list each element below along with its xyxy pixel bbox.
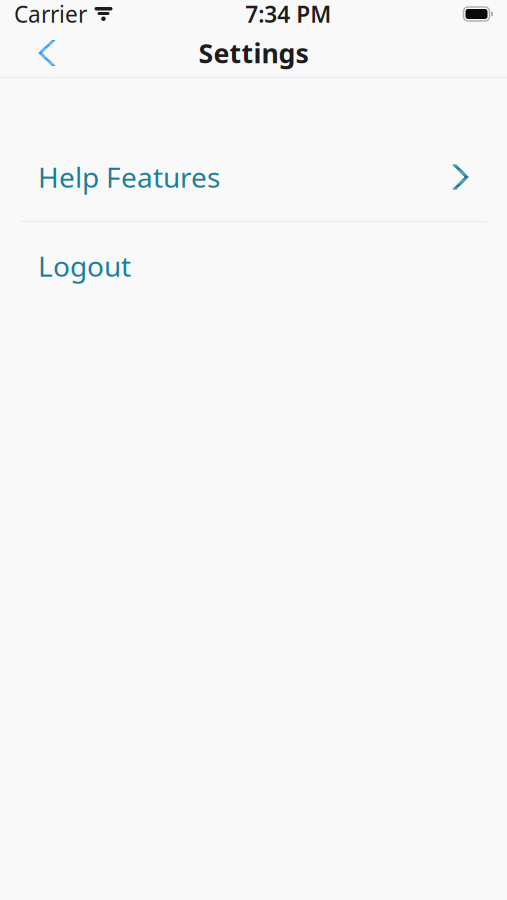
staticText: Settings xyxy=(198,35,308,71)
staticText: 7:34 PM xyxy=(245,0,331,29)
staticText: Logout xyxy=(38,247,131,285)
button[interactable]: Help Features xyxy=(0,133,507,221)
staticText: Help Features xyxy=(38,158,220,196)
button[interactable]: Back xyxy=(22,29,72,77)
staticText: Carrier xyxy=(14,0,87,29)
button[interactable]: Logout xyxy=(0,222,507,310)
